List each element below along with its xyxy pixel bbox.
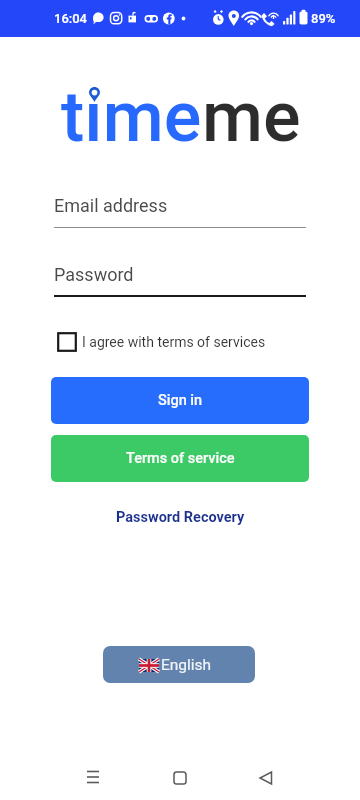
button[interactable]: Sign in [51, 377, 309, 424]
staticText: Email address [54, 195, 168, 216]
staticText: 16:04 [54, 11, 88, 26]
staticText: Password [54, 264, 134, 285]
button[interactable]: Password Recovery [108, 506, 253, 529]
staticText: me [202, 76, 301, 158]
button[interactable]: English [103, 646, 255, 683]
staticText: Password Recovery [116, 509, 245, 526]
staticText: tıme [61, 76, 202, 158]
staticText: English [161, 656, 212, 674]
button[interactable]: Terms of service [51, 435, 309, 482]
button[interactable]: Home [168, 765, 192, 789]
staticText: 89% [311, 11, 336, 26]
staticText: I agree with terms of services [82, 334, 266, 350]
button[interactable]: I agree with terms of services [57, 329, 266, 355]
staticText: Sign in [158, 392, 203, 409]
staticText: Terms of service [126, 450, 235, 467]
button[interactable]: Recent apps [81, 765, 105, 789]
button[interactable]: Back [254, 765, 278, 789]
